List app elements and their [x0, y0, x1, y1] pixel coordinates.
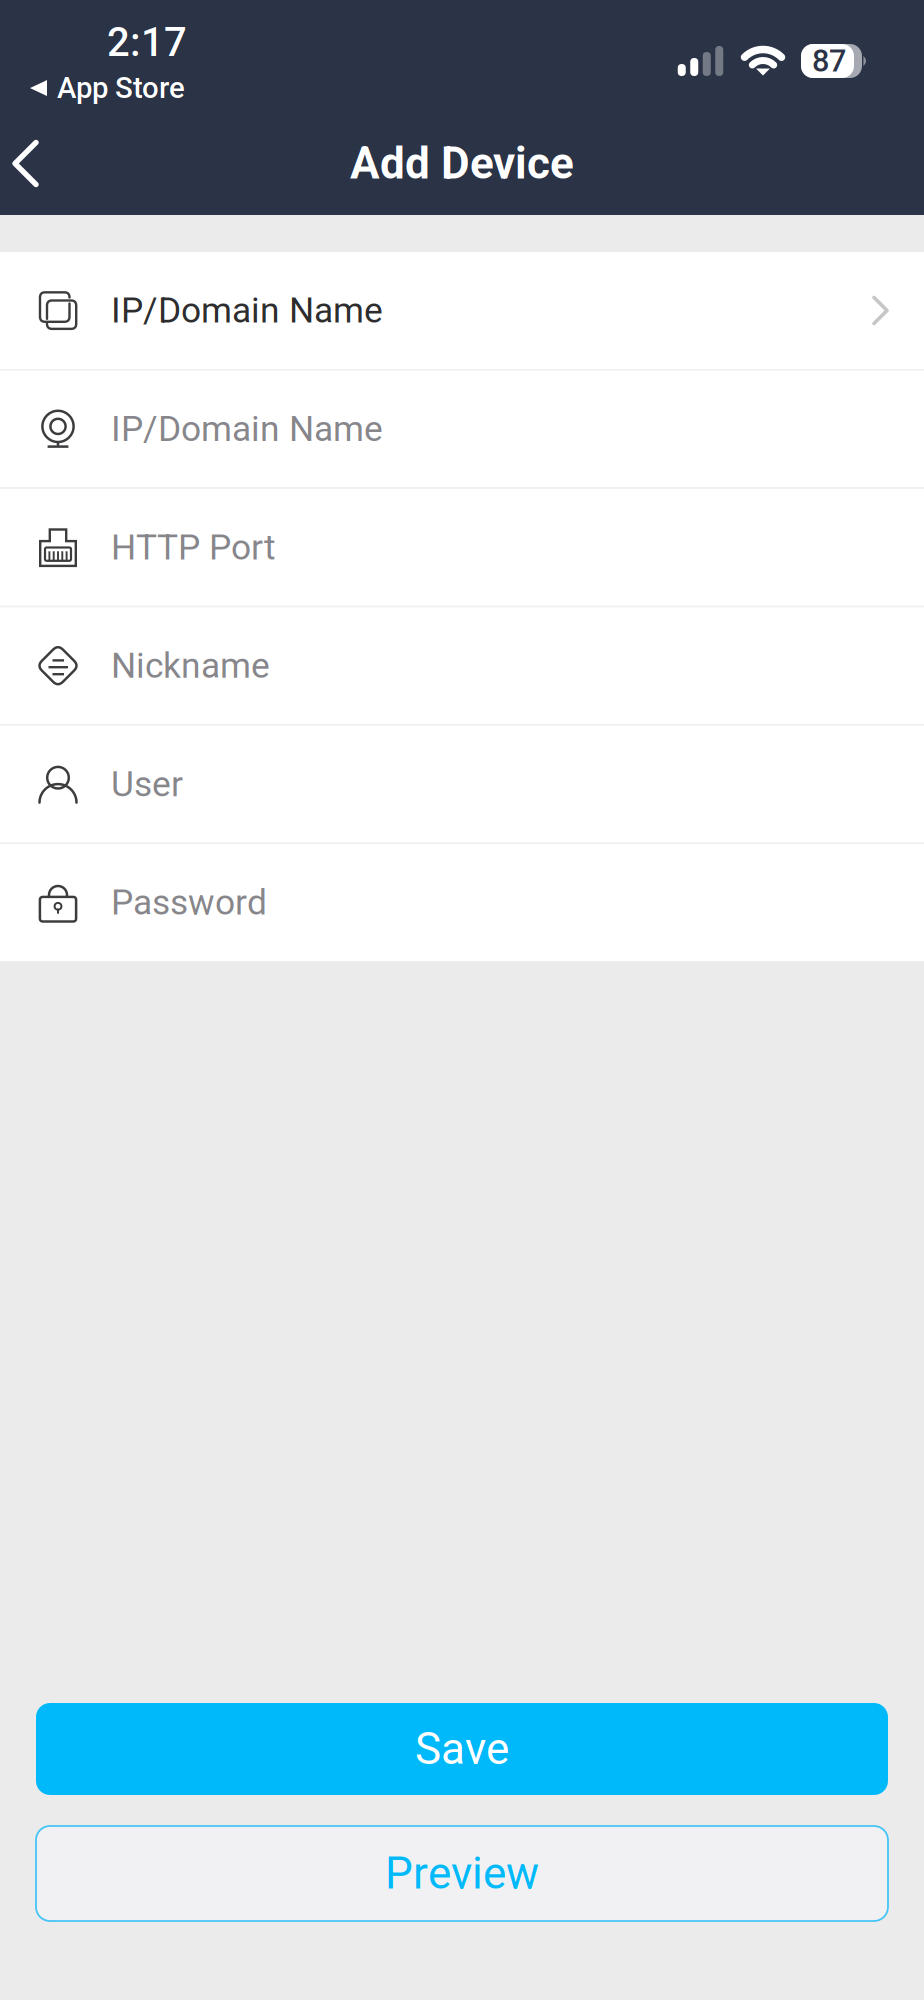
staticText: IP/Domain Name [111, 408, 383, 450]
button[interactable]: Preview [36, 1826, 888, 1921]
button[interactable]: User [0, 726, 924, 843]
button[interactable]: Nickname [0, 607, 924, 724]
button[interactable]: Save [36, 1703, 888, 1795]
staticText: App Store [57, 71, 185, 105]
button[interactable]: IP/Domain Name [0, 252, 924, 369]
staticText: Nickname [111, 645, 270, 686]
staticText: Preview [385, 1848, 539, 1899]
button[interactable]: HTTP Port [0, 489, 924, 606]
staticText: IP/Domain Name [111, 290, 383, 331]
staticText: HTTP Port [111, 527, 276, 568]
staticText: Password [111, 882, 267, 923]
staticText: 87 [812, 43, 846, 79]
staticText: Add Device [350, 138, 574, 189]
button[interactable]: Password [0, 844, 924, 961]
staticText: User [111, 763, 183, 805]
button[interactable]: IP/Domain Name [0, 370, 924, 487]
button[interactable]: Back [0, 114, 65, 212]
staticText: 2:17 [107, 19, 187, 66]
staticText: Save [415, 1723, 509, 1775]
